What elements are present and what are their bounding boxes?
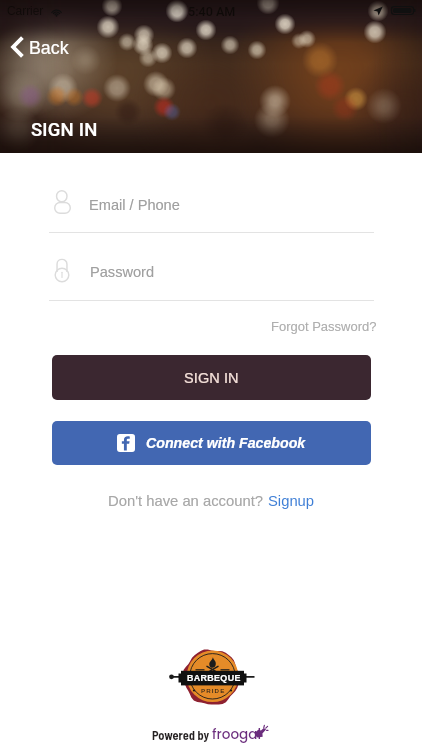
- staticText: BARBEQUE: [187, 673, 241, 683]
- button[interactable]: SIGN IN: [52, 355, 371, 400]
- staticText: Don't have an account?: [108, 493, 268, 510]
- staticText: Carrier: [7, 4, 44, 17]
- staticText: froogal: [212, 725, 262, 744]
- staticText: Powered by: [152, 728, 210, 743]
- staticText: 5:40 AM: [188, 4, 236, 19]
- staticText: Signup: [268, 493, 315, 510]
- button[interactable]: Forgot Password?: [268, 317, 380, 336]
- button[interactable]: Signup: [268, 493, 315, 510]
- staticText: Back: [29, 38, 69, 58]
- staticText: SIGN IN: [31, 119, 98, 141]
- staticText: Email / Phone: [89, 197, 180, 213]
- staticText: PRIDE: [201, 687, 226, 694]
- staticText: Connect with Facebook: [146, 435, 306, 451]
- staticText: SIGN IN: [184, 370, 239, 386]
- staticText: Forgot Password?: [271, 319, 377, 334]
- button[interactable]: Connect with Facebook: [52, 421, 371, 465]
- staticText: Password: [90, 264, 155, 280]
- button[interactable]: Back: [6, 32, 79, 63]
